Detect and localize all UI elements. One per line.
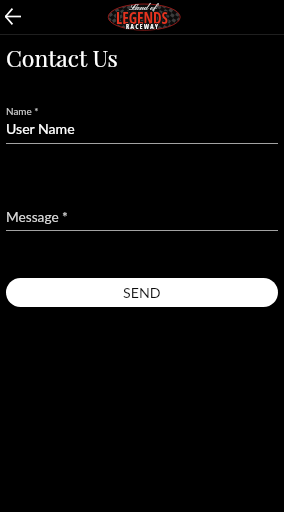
staticText: LEGENDS xyxy=(116,8,168,29)
staticText: RACEWAY xyxy=(125,22,159,30)
staticText: Name * xyxy=(6,105,39,117)
staticText: Contact Us xyxy=(6,42,118,73)
staticText: SEND xyxy=(123,284,161,301)
staticText: RACEWAY xyxy=(125,21,159,29)
button[interactable]: SEND xyxy=(6,278,278,307)
staticText: LEGENDS xyxy=(117,7,169,28)
staticText: User Name xyxy=(6,120,75,137)
staticText: RACEWAY xyxy=(126,23,160,31)
staticText: LEGENDS xyxy=(117,9,169,30)
staticText: RACEWAY xyxy=(126,22,160,30)
staticText: LEGENDS xyxy=(116,7,168,28)
staticText: LEGENDS xyxy=(116,7,168,28)
staticText: RACEWAY xyxy=(126,23,160,31)
staticText: RACEWAY xyxy=(126,21,160,29)
staticText: RACEWAY xyxy=(126,22,160,30)
staticText: Land of xyxy=(129,2,157,13)
staticText: RACEWAY xyxy=(125,23,159,31)
staticText: LEGENDS xyxy=(116,9,168,30)
staticText: LEGENDS xyxy=(115,8,167,29)
staticText: LEGENDS xyxy=(116,9,168,30)
button[interactable]: Back xyxy=(0,0,34,34)
staticText: RACEWAY xyxy=(126,21,160,29)
staticText: LEGENDS xyxy=(117,8,169,29)
staticText: Message * xyxy=(6,208,68,224)
